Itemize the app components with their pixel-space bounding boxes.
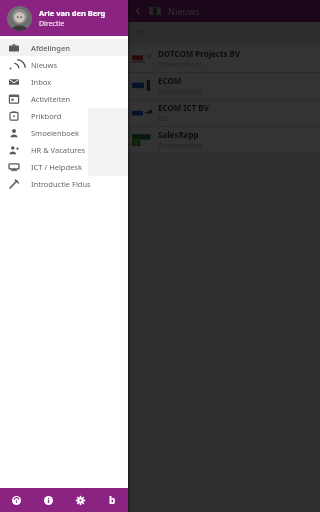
staticText: Inbox [31,77,52,87]
staticText: Arie van den Berg [39,8,106,18]
button[interactable]: Nieuws [0,56,128,73]
staticText: Smoelenboek [31,128,80,138]
button[interactable]: HR & Vacatures [0,141,128,158]
staticText: Afdelingen [31,43,70,53]
staticText: Development [158,141,203,151]
staticText: HR & Vacatures [31,145,86,155]
button[interactable]: DOTCOM Projects BV [0,46,320,72]
staticText: Nieuws [168,5,200,17]
staticText: Development [158,60,203,70]
button[interactable]: Prikbord [0,107,128,124]
button[interactable]: Help [7,491,25,509]
button[interactable]: Introductie Fidus [0,175,128,192]
staticText: ICT [158,114,169,124]
button[interactable]: Activiteiten [0,90,128,107]
staticText: ECOM ICT BV [158,102,209,113]
button[interactable]: Settings [71,491,89,509]
button[interactable]: ECOM [0,73,320,99]
button[interactable]: Info [39,491,57,509]
staticText: SalesRapp [158,129,199,140]
button[interactable]: Back [130,3,146,19]
button[interactable]: SalesRapp [0,127,320,153]
staticText: ec [138,27,146,37]
button[interactable]: Brand [103,491,121,509]
button[interactable]: Inbox [0,73,128,90]
button[interactable]: Smoelenboek [0,124,128,141]
staticText: Nieuws [31,60,57,70]
button[interactable]: ICT / Helpdesk [0,158,128,175]
staticText: DOTCOM Projects BV [158,48,241,59]
button[interactable]: Afdelingen [0,39,128,56]
button[interactable]: Arie van den Berg [0,0,128,36]
staticText: b [109,493,116,507]
staticText: ICT / Helpdesk [31,162,82,172]
button[interactable]: ECOM ICT BV [0,100,320,126]
staticText: Activiteiten [31,94,71,104]
staticText: Development [158,87,203,97]
staticText: ECOM [158,75,182,86]
staticText: Introductie Fidus [31,179,91,189]
staticText: Directie [39,19,65,29]
staticText: Prikbord [31,111,62,121]
